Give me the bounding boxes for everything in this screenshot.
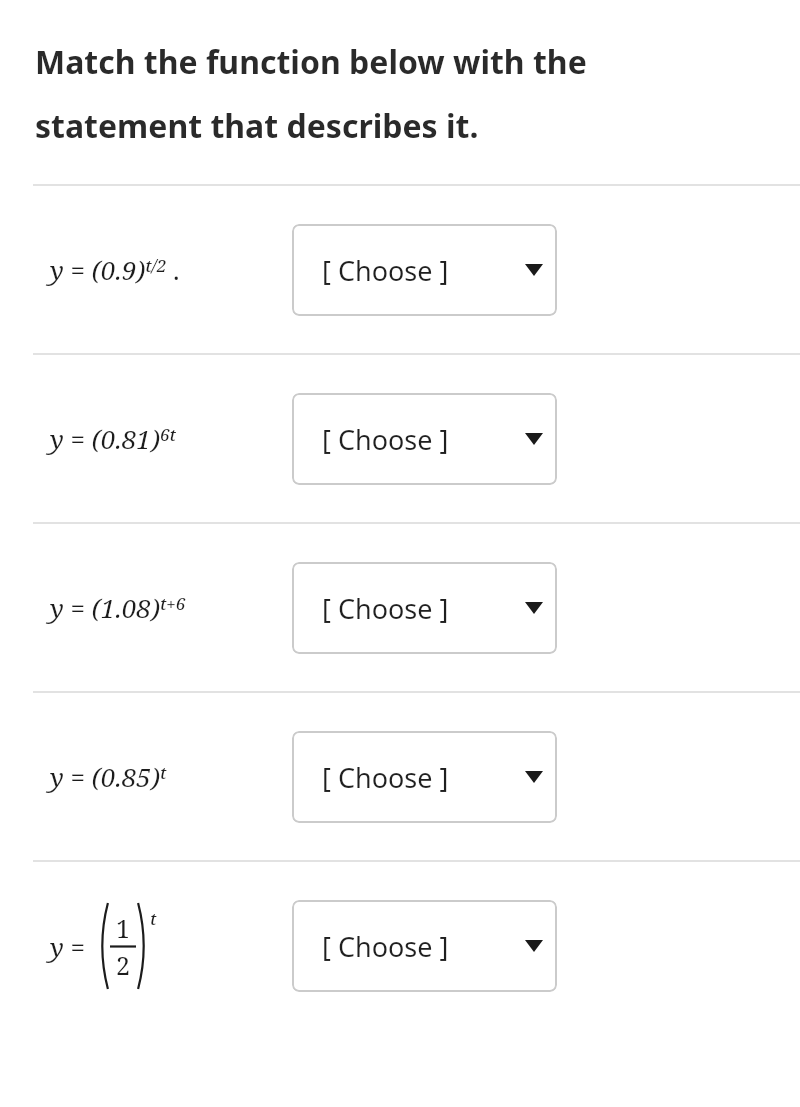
staticText: Match the function below with the statem… bbox=[35, 40, 587, 148]
staticText: t bbox=[150, 907, 157, 930]
button[interactable]: [ Choose ] bbox=[292, 393, 557, 485]
button[interactable]: [ Choose ] bbox=[292, 900, 557, 992]
staticText: y = bbox=[50, 929, 86, 964]
staticText: [ Choose ] bbox=[322, 590, 449, 627]
staticText: [ Choose ] bbox=[322, 928, 449, 965]
button[interactable]: [ Choose ] bbox=[292, 731, 557, 823]
staticText: 1 bbox=[116, 911, 130, 945]
staticText: y = (0.9)t/2 . bbox=[50, 252, 180, 287]
staticText: [ Choose ] bbox=[322, 759, 449, 796]
button[interactable]: [ Choose ] bbox=[292, 224, 557, 316]
staticText: y = (0.85)t bbox=[50, 759, 167, 794]
staticText: y = (0.81)6t bbox=[50, 421, 176, 456]
staticText: 2 bbox=[116, 948, 130, 982]
staticText: y = (1.08)t+6 bbox=[50, 590, 186, 625]
staticText: [ Choose ] bbox=[322, 252, 449, 289]
button[interactable]: [ Choose ] bbox=[292, 562, 557, 654]
staticText: [ Choose ] bbox=[322, 421, 449, 458]
